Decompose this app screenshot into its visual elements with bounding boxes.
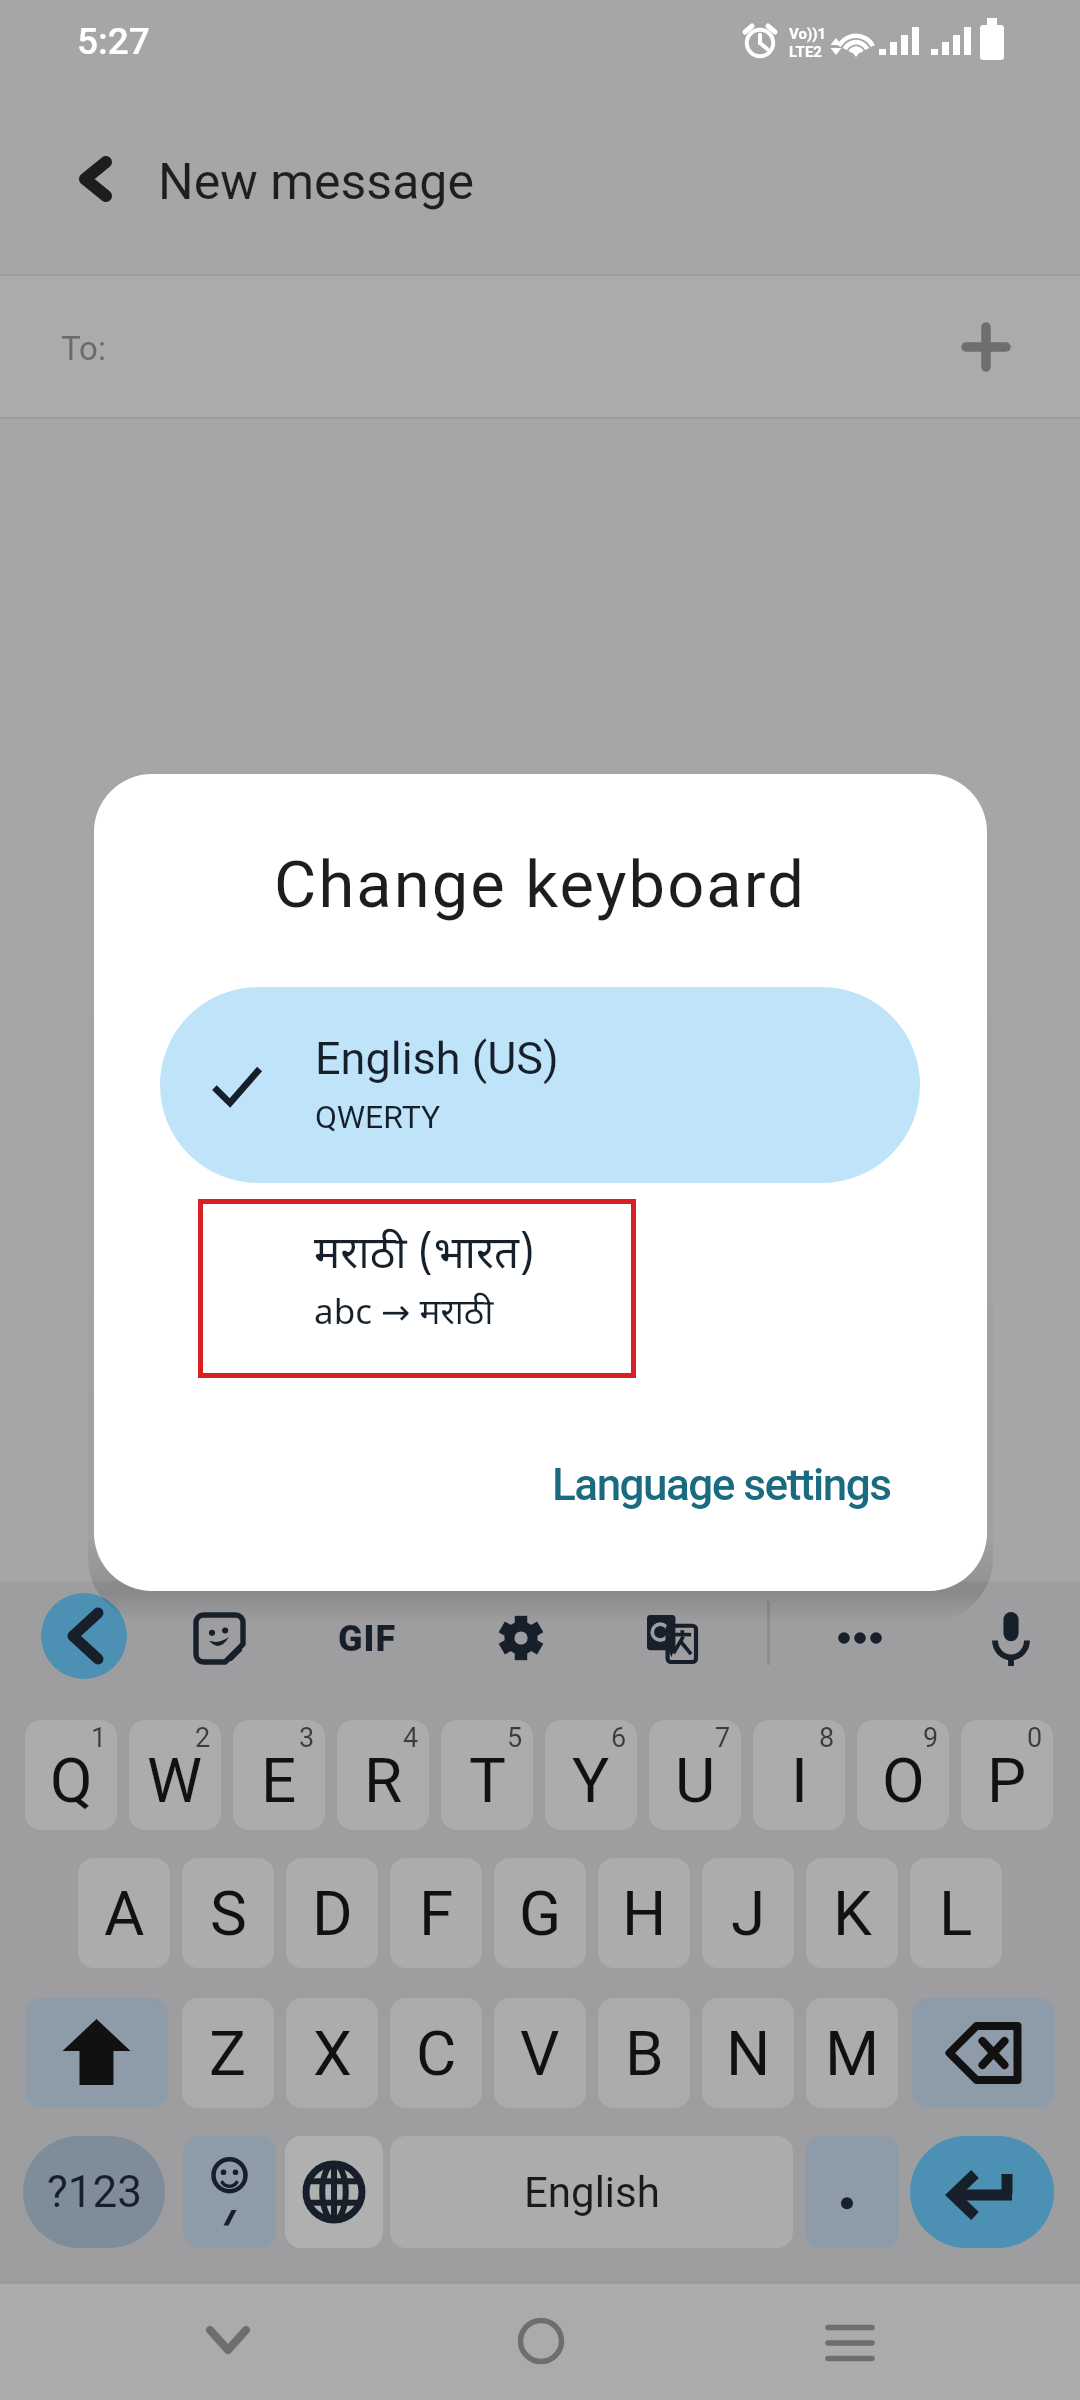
staticText: New message: [158, 153, 474, 212]
button[interactable]: Stickers: [196, 1615, 243, 1662]
staticText: Z: [209, 2017, 247, 2090]
staticText: O: [882, 1744, 925, 1817]
staticText: Y: [572, 1744, 610, 1817]
staticText: L: [939, 1877, 973, 1950]
staticText: N: [726, 2017, 771, 2090]
staticText: 8: [819, 1722, 835, 1754]
staticText: 4: [403, 1722, 419, 1754]
staticText: G: [519, 1877, 562, 1950]
button[interactable]: [805, 2136, 899, 2248]
staticText: 0: [1027, 1722, 1043, 1754]
staticText: H: [622, 1877, 667, 1950]
staticText: C: [416, 2017, 457, 2090]
staticText: S: [210, 1877, 247, 1950]
button[interactable]: More options: [826, 1604, 894, 1672]
button[interactable]: GIF: [338, 1618, 397, 1660]
button[interactable]: N: [702, 1998, 794, 2108]
button[interactable]: B: [598, 1998, 690, 2108]
button[interactable]: Voice input: [990, 1612, 1032, 1666]
button[interactable]: I: [753, 1720, 845, 1830]
staticText: B: [625, 2017, 664, 2090]
button[interactable]: V: [494, 1998, 586, 2108]
staticText: F: [419, 1877, 454, 1950]
button[interactable]: Close toolbar: [41, 1593, 127, 1679]
staticText: 5: [507, 1722, 523, 1754]
button[interactable]: Recent apps: [800, 2291, 900, 2391]
button[interactable]: F: [390, 1858, 482, 1968]
staticText: P: [987, 1744, 1027, 1817]
button[interactable]: A: [78, 1858, 170, 1968]
staticText: To:: [61, 329, 106, 368]
button[interactable]: P: [961, 1720, 1053, 1830]
staticText: K: [833, 1877, 872, 1950]
button[interactable]: Home: [491, 2291, 591, 2391]
button[interactable]: S: [182, 1858, 274, 1968]
button[interactable]: M: [806, 1998, 898, 2108]
button[interactable]: Enter: [910, 2136, 1054, 2248]
staticText: English (US): [315, 1032, 559, 1085]
button[interactable]: Z: [182, 1998, 274, 2108]
staticText: U: [675, 1744, 716, 1817]
staticText: I: [791, 1744, 808, 1817]
button[interactable]: L: [910, 1858, 1002, 1968]
button[interactable]: Backspace: [912, 1998, 1055, 2108]
button[interactable]: U: [649, 1720, 741, 1830]
staticText: ?123: [47, 2166, 142, 2218]
staticText: D: [312, 1877, 353, 1950]
button[interactable]: English: [390, 2136, 793, 2248]
button[interactable]: Shift: [25, 1998, 168, 2108]
staticText: 6: [611, 1722, 627, 1754]
staticText: 5:27: [77, 20, 150, 63]
staticText: GIF: [338, 1618, 397, 1660]
button[interactable]: Add recipient: [944, 305, 1028, 389]
button[interactable]: E: [233, 1720, 325, 1830]
staticText: abc → मराठी: [314, 1292, 494, 1339]
staticText: X: [313, 2017, 352, 2090]
staticText: मराठी (भारत): [314, 1229, 535, 1286]
staticText: 7: [715, 1722, 731, 1754]
button[interactable]: Settings: [497, 1614, 545, 1662]
button[interactable]: H: [598, 1858, 690, 1968]
button[interactable]: D: [286, 1858, 378, 1968]
button[interactable]: C: [390, 1998, 482, 2108]
staticText: LTE2: [789, 43, 822, 61]
staticText: J: [731, 1877, 766, 1950]
button[interactable]: Translate: [647, 1615, 696, 1664]
staticText: T: [469, 1744, 506, 1817]
staticText: E: [261, 1744, 297, 1817]
button[interactable]: Change keyboard language: [285, 2136, 383, 2248]
button[interactable]: R: [337, 1720, 429, 1830]
button[interactable]: Language settings: [552, 1459, 891, 1511]
staticText: Change keyboard: [274, 847, 807, 923]
staticText: 2: [195, 1722, 211, 1754]
staticText: A: [104, 1877, 145, 1950]
button[interactable]: ?123: [23, 2136, 165, 2248]
staticText: W: [147, 1744, 203, 1817]
staticText: QWERTY: [315, 1098, 441, 1136]
staticText: M: [825, 2017, 880, 2090]
staticText: English: [524, 2168, 660, 2217]
button[interactable]: Emoji: [183, 2136, 276, 2248]
staticText: Q: [50, 1744, 93, 1817]
button[interactable]: Back: [55, 137, 139, 221]
staticText: 3: [299, 1722, 315, 1754]
staticText: Language settings: [552, 1459, 891, 1511]
button[interactable]: O: [857, 1720, 949, 1830]
staticText: 1: [91, 1722, 107, 1754]
staticText: 9: [923, 1722, 939, 1754]
button[interactable]: K: [806, 1858, 898, 1968]
staticText: R: [364, 1744, 403, 1817]
button[interactable]: Q: [25, 1720, 117, 1830]
button[interactable]: English (US): [160, 987, 920, 1183]
button[interactable]: W: [129, 1720, 221, 1830]
staticText: V: [520, 2017, 560, 2090]
button[interactable]: T: [441, 1720, 533, 1830]
button[interactable]: Y: [545, 1720, 637, 1830]
button[interactable]: J: [702, 1858, 794, 1968]
button[interactable]: मराठी (भारत): [198, 1199, 636, 1378]
button[interactable]: X: [286, 1998, 378, 2108]
button[interactable]: G: [494, 1858, 586, 1968]
button[interactable]: Back: [178, 2291, 278, 2391]
staticText: Vo))1: [789, 25, 827, 43]
